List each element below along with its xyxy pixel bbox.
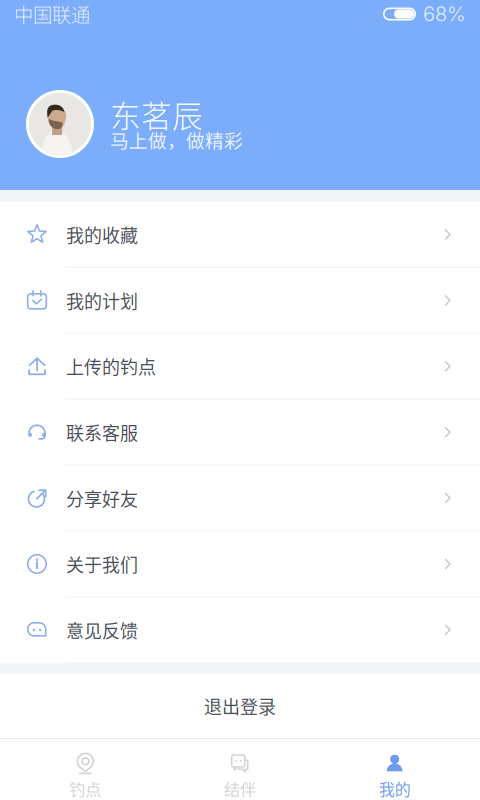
staticText: 退出登录 [204, 693, 276, 719]
button[interactable]: 结伴 [163, 739, 317, 800]
staticText: 结伴 [224, 777, 256, 800]
button[interactable]: 关于我们 [0, 531, 480, 597]
button[interactable]: 退出登录 [0, 674, 480, 738]
staticText: 我的 [379, 777, 411, 800]
staticText: 意见反馈 [66, 617, 138, 643]
staticText: 关于我们 [66, 551, 138, 577]
staticText: 分享好友 [66, 485, 138, 511]
button[interactable]: 分享好友 [0, 466, 480, 531]
staticText: 我的计划 [66, 287, 138, 313]
staticText: 中国联通 [14, 0, 90, 28]
staticText: 马上做，做精彩 [110, 126, 243, 153]
button[interactable]: 我的 [317, 739, 472, 800]
button[interactable]: 我的收藏 [0, 202, 480, 268]
staticText: 东茗辰 [110, 92, 203, 136]
button[interactable]: 钓点 [8, 739, 163, 800]
staticText: 联系客服 [66, 419, 138, 445]
staticText: 钓点 [69, 777, 101, 800]
button[interactable]: 联系客服 [0, 400, 480, 466]
staticText: 我的收藏 [66, 221, 138, 247]
button[interactable]: 意见反馈 [0, 597, 480, 663]
button[interactable]: 上传的钓点 [0, 334, 480, 400]
staticText: 68% [423, 2, 466, 26]
button[interactable]: 我的计划 [0, 268, 480, 334]
staticText: 上传的钓点 [66, 353, 156, 379]
